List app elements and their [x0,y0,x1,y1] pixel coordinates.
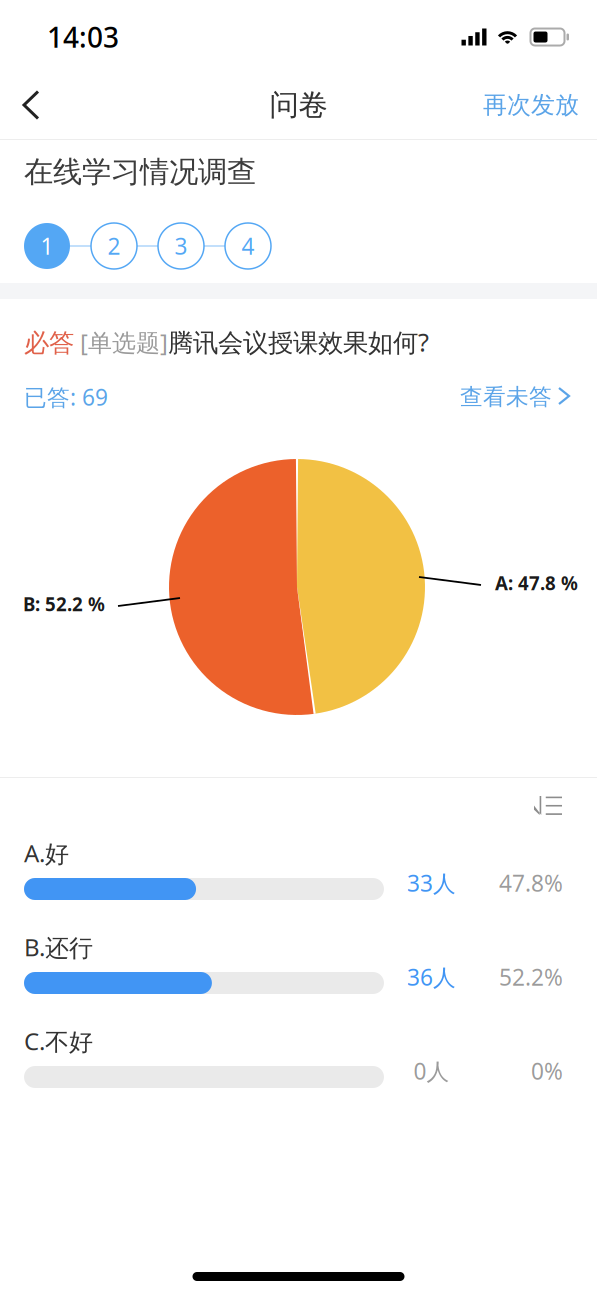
staticText: 14:03 [47,18,119,56]
button[interactable]: 再次发放 [463,72,597,138]
staticText: 必答 [24,327,74,359]
staticText: 腾讯会议授课效果如何? [168,325,429,359]
staticText: A.好 [24,837,69,869]
staticText: 52.2% [499,962,563,992]
staticText: 3 [174,231,187,261]
button[interactable]: Sort [516,784,597,834]
staticText: 查看未答 [460,383,552,411]
staticText: A: 47.8 % [495,571,578,595]
staticText: C.不好 [24,1025,93,1057]
staticText: 1 [40,231,53,261]
button[interactable]: 查看未答 [460,376,572,418]
staticText: B.还行 [24,931,93,963]
staticText: 再次发放 [483,90,579,120]
staticText: 47.8% [499,868,563,898]
staticText: 2 [107,231,120,261]
staticText: 0% [531,1056,563,1086]
staticText: [单选题] [74,326,168,358]
staticText: 问卷 [269,87,327,123]
staticText: B: 52.2 % [23,592,105,616]
staticText: 已答: 69 [24,382,108,412]
staticText: 在线学习情况调查 [24,154,256,190]
staticText: 0人 [413,1056,449,1086]
button[interactable]: Back [0,71,68,138]
staticText: 4 [241,231,254,261]
staticText: 36人 [407,962,456,992]
staticText: 33人 [407,868,456,898]
